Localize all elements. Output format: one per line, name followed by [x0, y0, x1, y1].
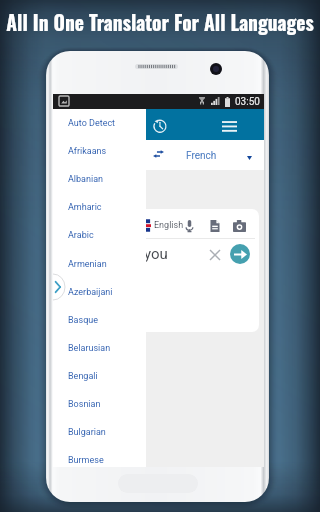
button[interactable]: Translate [230, 244, 250, 264]
button[interactable]: French [146, 140, 264, 170]
button[interactable]: Albanian [53, 165, 146, 193]
button[interactable]: Basque [53, 306, 146, 334]
button[interactable]: Bosnian [53, 390, 146, 418]
button[interactable]: Voice input [182, 218, 197, 233]
staticText: Burmese [68, 455, 104, 466]
staticText: Basque [68, 315, 98, 326]
button[interactable]: Document [207, 218, 222, 233]
staticText: Armenian [68, 259, 107, 270]
button[interactable]: Burmese [53, 446, 146, 474]
button[interactable]: Open language drawer [53, 274, 65, 300]
button[interactable]: Azerbaijani [53, 278, 146, 306]
staticText: French [186, 150, 217, 162]
button[interactable]: Camera [232, 218, 247, 233]
staticText: English [154, 220, 184, 231]
staticText: Albanian [68, 174, 104, 185]
button[interactable]: Afrikaans [53, 137, 146, 165]
button[interactable]: History [150, 116, 168, 134]
button[interactable]: Bulgarian [53, 418, 146, 446]
button[interactable]: Menu [220, 116, 238, 134]
button[interactable]: Belarusian [53, 334, 146, 362]
button[interactable]: Arabic [53, 221, 146, 249]
button[interactable]: Armenian [53, 250, 146, 278]
staticText: Arabic [68, 230, 94, 241]
staticText: Bosnian [68, 399, 101, 410]
staticText: you [144, 245, 168, 263]
staticText: Amharic [68, 202, 102, 213]
staticText: Bengali [68, 371, 98, 382]
staticText: Belarusian [68, 343, 111, 354]
staticText: 03:50 [235, 96, 260, 108]
staticText: Azerbaijani [68, 287, 113, 298]
staticText: All In One Translator For All Languages [6, 8, 314, 37]
staticText: Auto Detect [68, 118, 116, 129]
button[interactable]: Auto Detect [53, 109, 146, 137]
button[interactable]: Bengali [53, 362, 146, 390]
staticText: Afrikaans [68, 146, 107, 157]
button[interactable]: Amharic [53, 193, 146, 221]
staticText: Bulgarian [68, 427, 106, 438]
button[interactable]: Clear text [207, 247, 222, 262]
